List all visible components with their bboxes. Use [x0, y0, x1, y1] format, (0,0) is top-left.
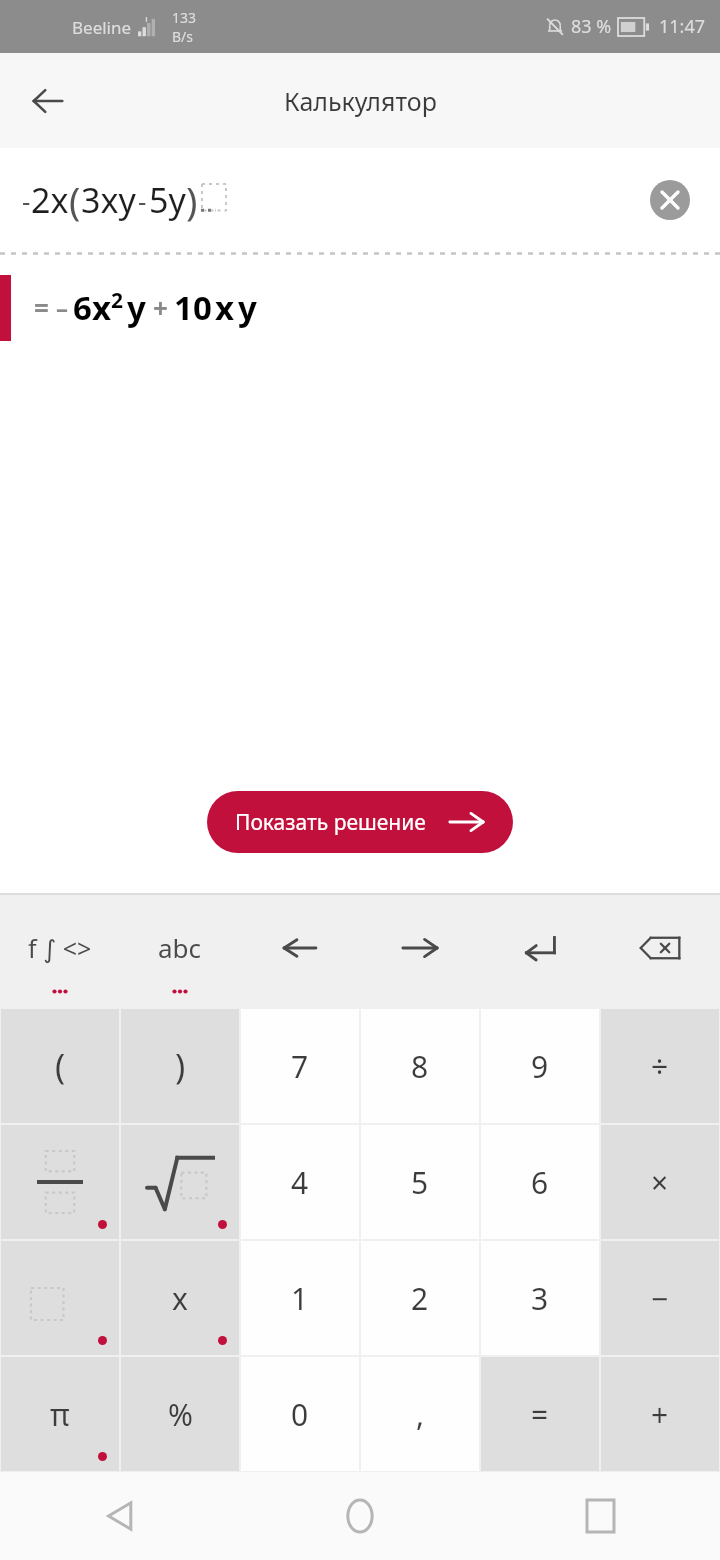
staticText: ( — [69, 174, 81, 226]
staticText: 10 — [174, 285, 212, 330]
staticText: 7 — [291, 1046, 309, 1087]
staticText: Калькулятор — [284, 84, 437, 118]
staticText: 6x — [73, 285, 111, 330]
button[interactable]: 8 — [361, 1009, 479, 1123]
staticText: 83 % — [571, 14, 612, 39]
button[interactable]: ( — [1, 1009, 119, 1123]
button[interactable]: ) — [121, 1009, 239, 1123]
button[interactable]: f ∫ <> — [0, 895, 120, 1008]
staticText: 3xy — [81, 177, 136, 223]
staticText: , — [416, 1394, 425, 1435]
button[interactable]: , — [361, 1357, 479, 1471]
staticText: 9 — [531, 1046, 549, 1087]
button[interactable]: Back — [18, 71, 78, 131]
staticText: x — [172, 1278, 188, 1319]
staticText: ( — [55, 1043, 66, 1089]
staticText: 3 — [531, 1278, 549, 1319]
staticText: abc — [158, 930, 202, 965]
button[interactable]: Enter — [480, 895, 600, 1008]
button[interactable]: ÷ — [601, 1009, 719, 1123]
staticText: 2x — [31, 177, 69, 223]
button[interactable]: × — [601, 1125, 719, 1239]
staticText: 5y — [149, 177, 186, 223]
staticText: y — [127, 285, 146, 330]
staticText: 4 — [291, 1162, 309, 1203]
button[interactable]: Показать решение — [207, 791, 513, 853]
button[interactable]: Home — [240, 1472, 480, 1560]
staticText: 6 — [531, 1162, 549, 1203]
staticText: Показать решение — [235, 808, 426, 837]
staticText: 5 — [411, 1162, 429, 1203]
button[interactable]: Clear — [648, 178, 692, 222]
button[interactable]: − — [601, 1241, 719, 1355]
button[interactable]: 2 — [361, 1241, 479, 1355]
button[interactable] — [1, 1241, 119, 1355]
button[interactable]: 0 — [241, 1357, 359, 1471]
staticText: − — [651, 1278, 669, 1319]
staticText: x — [215, 285, 235, 330]
staticText: y — [238, 285, 257, 330]
button[interactable]: Recents — [480, 1472, 720, 1560]
staticText: B/s — [172, 27, 194, 46]
staticText: f ∫ <> — [28, 931, 92, 965]
staticText: % — [168, 1394, 193, 1435]
button[interactable] — [1, 1125, 119, 1239]
button[interactable]: 3 — [481, 1241, 599, 1355]
staticText: 0 — [291, 1394, 309, 1435]
button[interactable]: Move left — [240, 895, 360, 1008]
staticText: - — [138, 183, 147, 218]
button[interactable]: 9 — [481, 1009, 599, 1123]
button[interactable]: 7 — [241, 1009, 359, 1123]
staticText: ) — [186, 174, 198, 226]
button[interactable]: 4 — [241, 1125, 359, 1239]
button[interactable]: 6 — [481, 1125, 599, 1239]
staticText: + — [153, 290, 168, 325]
button[interactable]: + — [601, 1357, 719, 1471]
staticText: 1 — [291, 1278, 309, 1319]
staticText: 133 — [172, 8, 197, 27]
staticText: = — [531, 1394, 549, 1435]
staticText: Beeline — [72, 16, 132, 39]
staticText: - — [22, 183, 31, 218]
staticText: 2 — [411, 1278, 429, 1319]
staticText: π — [50, 1394, 70, 1435]
staticText: 11:47 — [659, 14, 706, 39]
staticText: 2 — [111, 286, 124, 315]
button[interactable]: abc — [120, 895, 240, 1008]
staticText: 8 — [411, 1046, 429, 1087]
button[interactable]: = — [481, 1357, 599, 1471]
button[interactable] — [121, 1125, 239, 1239]
button[interactable]: 5 — [361, 1125, 479, 1239]
button[interactable]: x — [121, 1241, 239, 1355]
staticText: = — [34, 290, 49, 325]
button[interactable]: Backspace — [600, 895, 720, 1008]
staticText: × — [651, 1162, 669, 1203]
button[interactable]: % — [121, 1357, 239, 1471]
staticText: + — [651, 1394, 669, 1435]
button[interactable]: 1 — [241, 1241, 359, 1355]
button[interactable]: Back — [0, 1472, 240, 1560]
staticText: – — [56, 291, 68, 324]
button[interactable]: Move right — [360, 895, 480, 1008]
button[interactable]: π — [1, 1357, 119, 1471]
staticText: ÷ — [651, 1046, 669, 1087]
staticText: ) — [175, 1043, 186, 1089]
